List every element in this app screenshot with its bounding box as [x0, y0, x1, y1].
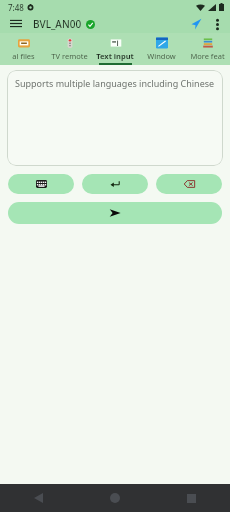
staticText: More feat — [190, 51, 225, 61]
staticText: Text input — [96, 51, 134, 61]
button[interactable]: More options — [208, 15, 226, 33]
button[interactable]: TV remote — [46, 33, 92, 65]
button[interactable]: Back — [0, 484, 76, 512]
button[interactable]: Enter — [82, 174, 148, 194]
button[interactable]: More feat — [184, 33, 230, 65]
button[interactable]: Home — [76, 484, 153, 512]
staticText: al files — [12, 51, 35, 61]
button[interactable]: al files — [0, 33, 46, 65]
button[interactable]: Window — [138, 33, 184, 65]
button[interactable]: Supports multiple languages including Ch… — [7, 70, 223, 166]
staticText: Supports multiple languages including Ch… — [15, 77, 215, 89]
staticText: Window — [147, 51, 176, 61]
button[interactable]: Send location — [187, 15, 205, 33]
button[interactable]: Text input — [92, 33, 138, 65]
button[interactable]: Send — [8, 202, 222, 224]
button[interactable]: Recent apps — [153, 484, 230, 512]
button[interactable]: Delete — [156, 174, 222, 194]
staticText: 7:48 — [8, 2, 24, 13]
button[interactable]: Keyboard — [8, 174, 74, 194]
staticText: TV remote — [51, 51, 88, 61]
button[interactable]: Menu — [6, 14, 26, 33]
staticText: BVL_AN00 — [33, 17, 82, 31]
